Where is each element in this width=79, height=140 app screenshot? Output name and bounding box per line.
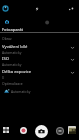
staticText: Automaticky — [2, 50, 22, 54]
staticText: 0 — [2, 75, 4, 79]
button[interactable]: Automaticky — [0, 87, 79, 94]
button[interactable]: Flash — [33, 5, 40, 12]
staticText: Obraz — [2, 36, 12, 41]
button[interactable]: ISO — [0, 55, 79, 66]
staticText: Vyvážení bílé — [2, 44, 28, 50]
staticText: Fotoaparát — [2, 27, 24, 32]
button[interactable]: Modes — [3, 127, 9, 133]
button[interactable]: Camera settings — [2, 5, 9, 12]
staticText: ISO — [2, 56, 9, 62]
button[interactable]: Vyvážení bílé — [0, 43, 79, 54]
staticText: Optimalizace — [2, 81, 23, 86]
staticText: Automaticky — [11, 89, 31, 93]
button[interactable]: Switch camera — [55, 126, 64, 135]
button[interactable]: Gallery — [68, 126, 76, 134]
button[interactable]: Take photo — [34, 124, 48, 138]
staticText: Automaticky — [2, 62, 22, 66]
button[interactable]: Record video — [18, 125, 28, 135]
button[interactable]: More options — [67, 5, 74, 12]
button[interactable]: Délka expozice — [0, 68, 79, 79]
staticText: Délka expozice — [2, 69, 32, 75]
